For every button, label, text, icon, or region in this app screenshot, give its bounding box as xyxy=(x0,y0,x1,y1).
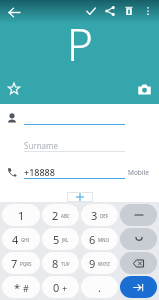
button[interactable]: 1 xyxy=(2,204,40,226)
staticText: 4 xyxy=(12,232,19,247)
staticText: ABC xyxy=(61,213,70,219)
button[interactable]: 8 xyxy=(42,252,79,274)
staticText: GHI xyxy=(21,237,30,243)
staticText: +18888 xyxy=(24,166,55,178)
button[interactable] xyxy=(0,108,159,128)
staticText: . xyxy=(98,280,101,295)
staticText: 7 xyxy=(11,256,18,271)
button[interactable]: 0 xyxy=(42,276,79,298)
staticText: MNO xyxy=(98,237,110,243)
staticText: JKL xyxy=(62,237,69,243)
staticText: 1 xyxy=(18,208,25,223)
button[interactable]: 9 xyxy=(81,252,118,274)
staticText: 9 xyxy=(89,256,96,271)
button[interactable]: Surname xyxy=(0,135,159,155)
staticText: TUV xyxy=(61,261,70,267)
button[interactable]: +18888 xyxy=(0,162,159,182)
button[interactable]: 4 xyxy=(2,228,40,250)
button[interactable]: 2 xyxy=(42,204,79,226)
button[interactable]: More options xyxy=(138,1,157,20)
button[interactable]: Next xyxy=(120,276,157,298)
button[interactable]: 7 xyxy=(2,252,40,274)
button[interactable]: Favorite xyxy=(4,79,24,99)
button[interactable]: Done xyxy=(81,1,100,20)
staticText: # xyxy=(23,282,29,294)
button[interactable]: Dash xyxy=(120,204,157,226)
staticText: WXYZ xyxy=(98,261,110,267)
staticText: 2 xyxy=(52,208,59,223)
button[interactable]: Add phone xyxy=(67,192,93,202)
staticText: PQRS xyxy=(20,261,32,267)
button[interactable]: 3 xyxy=(81,204,118,226)
button[interactable]: Delete xyxy=(119,1,138,20)
button[interactable]: Backspace xyxy=(120,252,157,274)
staticText: 3 xyxy=(91,208,98,223)
staticText: DEF xyxy=(100,213,109,219)
staticText: P xyxy=(67,14,93,74)
staticText: 0 xyxy=(53,280,60,295)
staticText: + xyxy=(62,282,68,294)
button[interactable]: Back xyxy=(3,1,25,23)
staticText: 6 xyxy=(89,232,96,247)
button[interactable]: 5 xyxy=(42,228,79,250)
button[interactable]: . xyxy=(81,276,118,298)
button[interactable]: * xyxy=(2,276,40,298)
button[interactable]: Share xyxy=(100,1,119,20)
staticText: Mobile xyxy=(128,168,149,177)
staticText: 8 xyxy=(52,256,59,271)
staticText: 5 xyxy=(53,232,60,247)
button[interactable]: Change photo xyxy=(134,79,154,99)
staticText: Surname xyxy=(24,140,59,151)
button[interactable]: 6 xyxy=(81,228,118,250)
staticText: * xyxy=(14,280,21,295)
button[interactable]: Pause xyxy=(120,228,157,250)
